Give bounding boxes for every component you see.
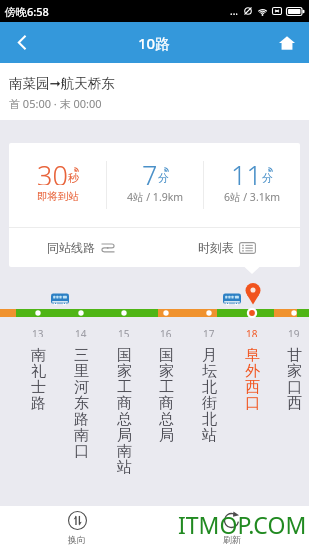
staticText: ... [230,4,239,18]
staticText: 礼 [31,362,46,378]
staticText: 同站线路 [47,240,95,255]
staticText: 秒 [68,171,79,185]
staticText: 13 [32,327,44,337]
staticText: 总 [159,410,174,426]
staticText: 路 [74,410,89,426]
staticText: 口 [287,378,302,394]
staticText: 南 [31,346,46,362]
staticText: 局 [159,426,174,442]
staticText: 国 [159,346,174,362]
staticText: 东 [74,394,89,410]
staticText: 南 [117,442,132,458]
button[interactable]: 时刻表 [154,228,300,267]
staticText: 南 [74,426,89,442]
staticText: 外 [245,362,260,378]
staticText: 口 [74,442,89,458]
staticText: 总 [117,410,132,426]
button[interactable]: Back [0,22,44,63]
staticText: 19 [288,327,300,337]
staticText: 站 [202,426,217,442]
staticText: 街 [202,394,217,410]
button[interactable]: 同站线路 [9,228,154,267]
staticText: 刷新 [223,534,241,545]
staticText: 15 [118,327,130,337]
staticText: 北 [202,410,217,426]
staticText: 分 [262,171,273,185]
staticText: 士 [31,378,46,394]
staticText: 工 [159,378,174,394]
staticText: 首 05:00 · 末 00:00 [9,96,102,111]
button[interactable]: Home [265,22,309,63]
button[interactable]: 刷新 [154,506,309,550]
staticText: 家 [287,362,302,378]
staticText: 6站 / 3.1km [224,190,281,204]
staticText: 30 [37,157,68,185]
staticText: 商 [117,394,132,410]
staticText: 北 [202,378,217,394]
staticText: 三 [74,346,89,362]
staticText: 里 [74,362,89,378]
staticText: 西 [287,394,302,410]
staticText: 局 [117,426,132,442]
staticText: 路 [31,394,46,410]
staticText: 河 [74,378,89,394]
staticText: 11 [231,157,262,185]
staticText: 17 [203,327,215,337]
staticText: 换向 [68,534,86,545]
staticText: 分 [158,171,169,185]
staticText: 口 [245,394,260,410]
staticText: 商 [159,394,174,410]
staticText: 西 [245,378,260,394]
staticText: ITMOP.COM [178,509,307,540]
staticText: 工 [117,378,132,394]
staticText: 坛 [202,362,217,378]
staticText: 4站 / 1.9km [127,190,184,204]
staticText: 甘 [287,346,302,362]
staticText: 18 [246,327,258,337]
staticText: 傍晚6:58 [5,4,49,19]
staticText: 即将到站 [37,190,79,203]
staticText: 16 [160,327,172,337]
staticText: 南菜园➞航天桥东 [9,75,115,92]
button[interactable]: 换向 [0,506,154,550]
staticText: 月 [202,346,217,362]
staticText: 站 [117,458,132,474]
staticText: 7 [142,157,158,185]
staticText: 国 [117,346,132,362]
staticText: 家 [117,362,132,378]
staticText: 14 [75,327,87,337]
staticText: 时刻表 [198,240,234,255]
staticText: 家 [159,362,174,378]
staticText: 10路 [138,33,171,53]
staticText: 阜 [245,346,260,362]
